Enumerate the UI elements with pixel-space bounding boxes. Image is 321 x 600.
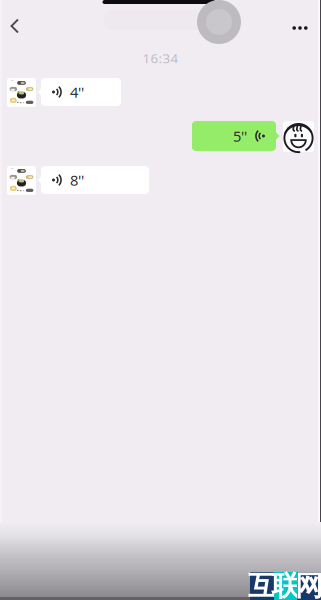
staticText: 5'' — [233, 126, 247, 146]
button[interactable]: 8'' — [41, 166, 149, 194]
button[interactable]: 5'' — [192, 121, 276, 151]
staticText: 4'' — [70, 82, 84, 102]
staticText: 16:34 — [142, 49, 178, 67]
button[interactable]: 4'' — [41, 78, 121, 106]
button[interactable]: Back — [0, 0, 39, 42]
staticText: 联 — [271, 569, 299, 600]
staticText: 网 — [295, 569, 321, 600]
button[interactable]: More — [285, 0, 321, 42]
staticText: 8'' — [70, 170, 84, 190]
staticText: 互 — [248, 569, 276, 600]
